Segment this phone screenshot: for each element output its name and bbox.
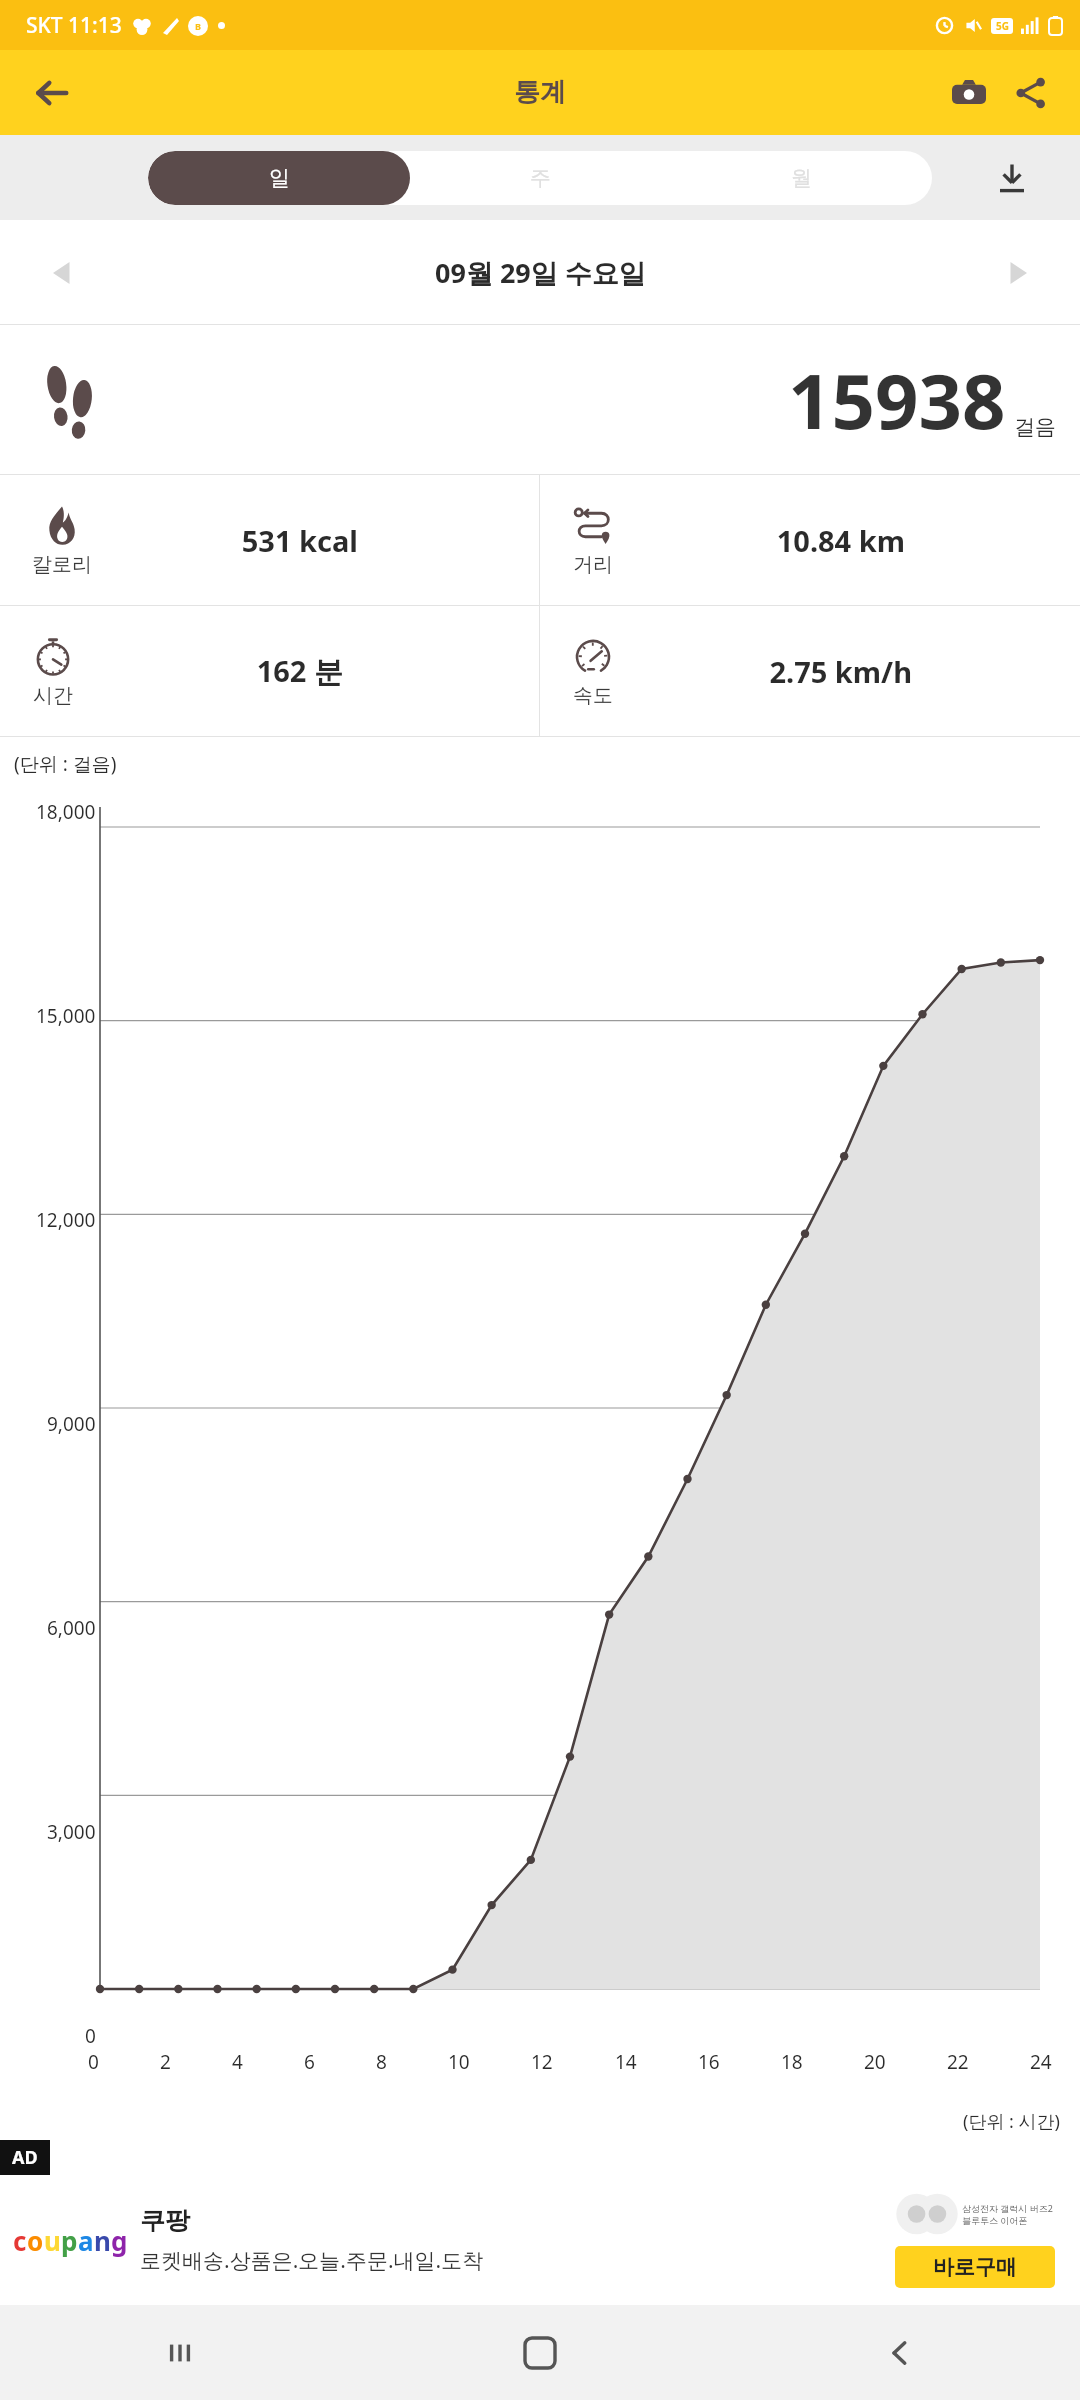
- staticText: 로켓배송.상품은.오늘.주문.내일.도착: [140, 2246, 484, 2275]
- staticText: 15938: [788, 348, 1006, 452]
- staticText: n: [94, 2223, 111, 2258]
- staticText: (단위 : 걸음): [14, 751, 117, 777]
- staticText: 쿠팡: [140, 2205, 190, 2236]
- staticText: 칼로리: [32, 552, 92, 577]
- staticText: 12: [531, 2049, 553, 2075]
- staticText: 162 분: [256, 651, 343, 691]
- staticText: 3,000: [47, 1819, 96, 1845]
- staticText: 4: [232, 2049, 243, 2075]
- staticText: 삼성전자 갤럭시 버즈2: [962, 2202, 1053, 2214]
- staticText: a: [78, 2223, 94, 2258]
- staticText: 6: [304, 2049, 315, 2075]
- staticText: 18: [781, 2049, 803, 2075]
- staticText: 22: [947, 2049, 969, 2075]
- button[interactable]: Next day: [988, 245, 1044, 301]
- staticText: 10.84 km: [776, 521, 905, 560]
- button[interactable]: Back: [20, 61, 84, 125]
- staticText: 12,000: [36, 1207, 96, 1233]
- staticText: 일: [269, 165, 290, 191]
- button[interactable]: Share: [1000, 62, 1062, 124]
- staticText: 거리: [573, 552, 613, 577]
- staticText: 주: [530, 165, 551, 191]
- staticText: (단위 : 시간): [963, 2109, 1060, 2134]
- staticText: 6,000: [47, 1615, 96, 1641]
- staticText: 24: [1030, 2049, 1052, 2075]
- staticText: 바로구매: [933, 2254, 1017, 2280]
- staticText: 9,000: [47, 1411, 96, 1437]
- button[interactable]: Home: [360, 2305, 720, 2400]
- staticText: 통계: [514, 76, 566, 109]
- staticText: 16: [698, 2049, 720, 2075]
- staticText: 8: [376, 2049, 387, 2075]
- button[interactable]: Recents: [0, 2305, 360, 2400]
- staticText: B: [195, 20, 201, 32]
- staticText: u: [44, 2223, 61, 2258]
- button[interactable]: 월: [671, 151, 932, 205]
- staticText: 블루투스 이어폰: [962, 2214, 1028, 2226]
- staticText: 09월 29일 수요일: [435, 254, 646, 291]
- button[interactable]: 시간: [0, 606, 539, 736]
- staticText: SKT 11:13: [26, 11, 122, 40]
- staticText: 2.75 km/h: [769, 652, 912, 691]
- button[interactable]: Previous day: [36, 245, 92, 301]
- button[interactable]: c: [0, 2175, 1080, 2305]
- staticText: 걸음: [1014, 414, 1056, 440]
- staticText: 0: [88, 2049, 99, 2075]
- staticText: 속도: [573, 683, 613, 708]
- staticText: 월: [791, 165, 812, 191]
- staticText: 15,000: [36, 1003, 96, 1029]
- button[interactable]: 속도: [540, 606, 1080, 736]
- staticText: 5G: [996, 19, 1009, 33]
- button[interactable]: Download: [984, 150, 1040, 206]
- staticText: c: [13, 2223, 27, 2258]
- staticText: 531 kcal: [241, 521, 358, 560]
- staticText: p: [61, 2223, 78, 2258]
- staticText: 10: [448, 2049, 470, 2075]
- staticText: 20: [864, 2049, 886, 2075]
- staticText: 14: [615, 2049, 637, 2075]
- staticText: o: [27, 2223, 44, 2258]
- staticText: 18,000: [36, 799, 96, 825]
- staticText: AD: [12, 2145, 38, 2170]
- button[interactable]: 거리: [540, 475, 1080, 605]
- button[interactable]: Back: [720, 2305, 1080, 2400]
- button[interactable]: 칼로리: [0, 475, 539, 605]
- button[interactable]: 일: [148, 151, 410, 205]
- staticText: 2: [160, 2049, 171, 2075]
- staticText: g: [111, 2223, 128, 2258]
- button[interactable]: 바로구매: [895, 2246, 1055, 2288]
- staticText: 0: [85, 2023, 96, 2049]
- staticText: 시간: [33, 683, 73, 708]
- button[interactable]: Camera: [938, 62, 1000, 124]
